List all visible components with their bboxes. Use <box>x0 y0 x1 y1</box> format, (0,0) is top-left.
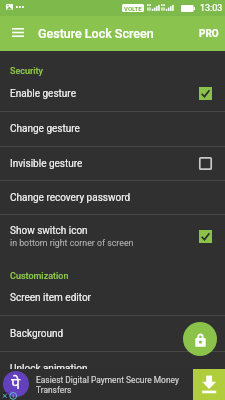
button[interactable]: Background <box>0 316 225 351</box>
staticText: Show switch icon <box>10 225 88 237</box>
button[interactable]: Advertisement <box>3 371 29 397</box>
staticText: Enable gesture <box>10 88 76 100</box>
button[interactable]: Open navigation menu <box>6 21 29 44</box>
staticText: Unlock animation <box>10 363 88 375</box>
staticText: PRO <box>199 28 219 40</box>
button[interactable]: Lock screen <box>183 322 217 356</box>
staticText: Transfers <box>36 385 72 395</box>
staticText: Gesture Lock Screen <box>38 26 154 41</box>
staticText: 13:03 <box>200 3 223 14</box>
staticText: Change gesture <box>10 123 80 135</box>
staticText: in bottom right corner of screen <box>10 238 134 248</box>
button[interactable]: Screen item editor <box>0 281 225 315</box>
button[interactable]: Show switch icon <box>0 215 225 257</box>
staticText: Background <box>10 328 64 340</box>
staticText: Change recovery password <box>10 192 131 204</box>
button[interactable]: Install app <box>193 369 225 400</box>
button[interactable]: Change gesture <box>0 112 225 146</box>
staticText: Screen item editor <box>10 292 91 304</box>
staticText: Customization <box>10 271 69 282</box>
staticText: Easiest Digital Payment Secure Money <box>36 375 179 385</box>
button[interactable]: Change recovery password <box>0 181 225 214</box>
button[interactable]: Invisible gesture <box>0 147 225 180</box>
button[interactable]: Unlock animation <box>0 352 225 386</box>
staticText: पे <box>11 372 21 394</box>
staticText: VOLTE <box>124 5 142 12</box>
staticText: Invisible gesture <box>10 158 83 170</box>
staticText: Security <box>10 66 43 77</box>
button[interactable]: PRO <box>194 16 225 51</box>
button[interactable]: Enable gesture <box>0 76 225 111</box>
